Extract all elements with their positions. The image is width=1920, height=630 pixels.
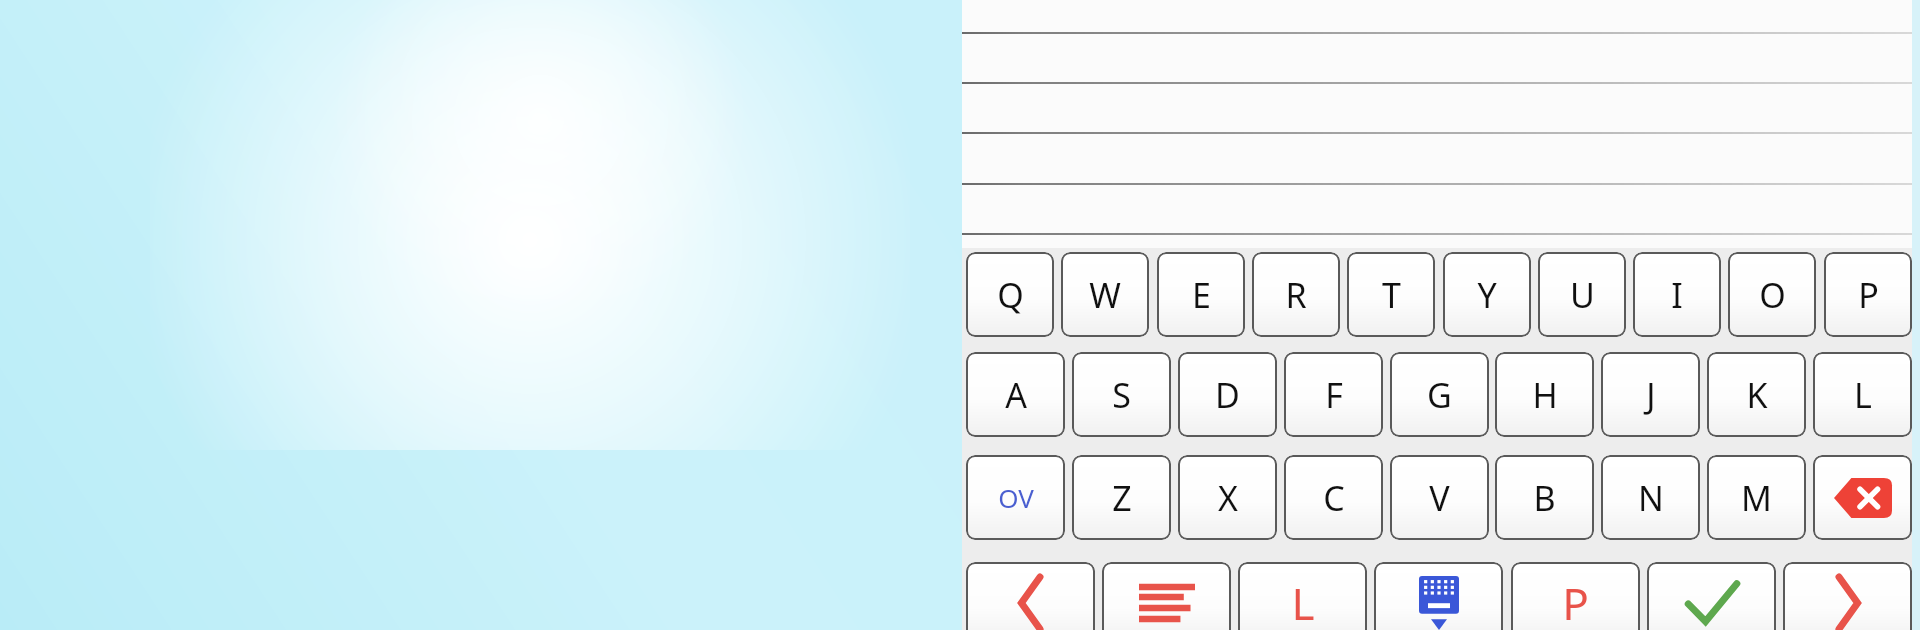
- button[interactable]: G: [1390, 352, 1489, 437]
- staticText: V: [1429, 475, 1450, 521]
- button[interactable]: OV: [966, 455, 1065, 540]
- button[interactable]: K: [1707, 352, 1806, 437]
- button[interactable]: L: [1238, 562, 1367, 630]
- staticText: N: [1638, 475, 1664, 521]
- staticText: E: [1192, 272, 1211, 318]
- button[interactable]: X: [1178, 455, 1277, 540]
- button[interactable]: Previous: [966, 562, 1095, 630]
- staticText: R: [1285, 272, 1307, 318]
- button[interactable]: N: [1601, 455, 1700, 540]
- staticText: I: [1671, 272, 1683, 318]
- button[interactable]: E: [1157, 252, 1245, 337]
- button[interactable]: B: [1495, 455, 1594, 540]
- staticText: T: [1382, 272, 1401, 318]
- staticText: W: [1089, 272, 1121, 318]
- staticText: H: [1532, 372, 1558, 418]
- button[interactable]: Menu: [1102, 562, 1231, 630]
- button[interactable]: M: [1707, 455, 1806, 540]
- staticText: O: [1759, 272, 1786, 318]
- staticText: B: [1533, 475, 1556, 521]
- button[interactable]: I: [1633, 252, 1721, 337]
- staticText: Z: [1112, 475, 1132, 521]
- button[interactable]: V: [1390, 455, 1489, 540]
- button[interactable]: Next: [1783, 562, 1912, 630]
- button[interactable]: Z: [1072, 455, 1171, 540]
- staticText: K: [1746, 372, 1768, 418]
- staticText: X: [1218, 475, 1238, 521]
- staticText: J: [1646, 372, 1656, 418]
- button[interactable]: Y: [1443, 252, 1531, 337]
- staticText: A: [1005, 372, 1027, 418]
- button[interactable]: A: [966, 352, 1065, 437]
- staticText: F: [1325, 372, 1343, 418]
- staticText: S: [1112, 372, 1131, 418]
- button[interactable]: W: [1061, 252, 1149, 337]
- button[interactable]: P: [1511, 562, 1640, 630]
- button[interactable]: U: [1538, 252, 1626, 337]
- staticText: Y: [1477, 272, 1497, 318]
- button[interactable]: O: [1728, 252, 1816, 337]
- staticText: G: [1427, 372, 1452, 418]
- button[interactable]: L: [1813, 352, 1912, 437]
- button[interactable]: S: [1072, 352, 1171, 437]
- button[interactable]: F: [1284, 352, 1383, 437]
- button[interactable]: P: [1824, 252, 1912, 337]
- staticText: P: [1562, 573, 1589, 630]
- staticText: U: [1570, 272, 1595, 318]
- button[interactable]: Q: [966, 252, 1054, 337]
- staticText: P: [1858, 272, 1879, 318]
- staticText: OV: [998, 480, 1034, 515]
- button[interactable]: Confirm: [1647, 562, 1776, 630]
- button[interactable]: T: [1347, 252, 1435, 337]
- staticText: L: [1854, 372, 1872, 418]
- button[interactable]: Hide keyboard: [1374, 562, 1503, 630]
- staticText: Q: [997, 272, 1024, 318]
- button[interactable]: C: [1284, 455, 1383, 540]
- button[interactable]: J: [1601, 352, 1700, 437]
- staticText: D: [1215, 372, 1240, 418]
- button[interactable]: R: [1252, 252, 1340, 337]
- button[interactable]: H: [1495, 352, 1594, 437]
- staticText: M: [1741, 475, 1772, 521]
- staticText: L: [1291, 573, 1315, 630]
- button[interactable]: D: [1178, 352, 1277, 437]
- button[interactable]: Backspace: [1813, 455, 1912, 540]
- staticText: C: [1323, 475, 1345, 521]
